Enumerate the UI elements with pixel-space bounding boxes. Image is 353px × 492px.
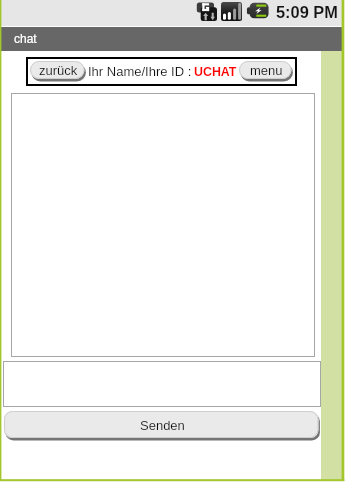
staticText: menu	[250, 63, 283, 78]
button[interactable]	[3, 361, 321, 407]
button[interactable]	[11, 93, 315, 357]
button[interactable]: menu	[239, 61, 294, 82]
other: Signal strength	[221, 2, 242, 21]
other: Mobile data	[196, 2, 217, 21]
staticText: zurück	[39, 63, 78, 78]
staticText: UCHAT	[194, 65, 237, 79]
staticText: 5:09 PM	[276, 3, 338, 21]
staticText: Ihr Name/Ihre ID :	[88, 64, 192, 79]
button[interactable]: zurück	[30, 61, 87, 82]
other: Battery charging	[246, 2, 269, 19]
staticText: chat	[14, 32, 37, 45]
staticText: Senden	[140, 418, 185, 433]
button[interactable]: chat	[1, 27, 342, 51]
button[interactable]: Senden	[4, 411, 321, 441]
